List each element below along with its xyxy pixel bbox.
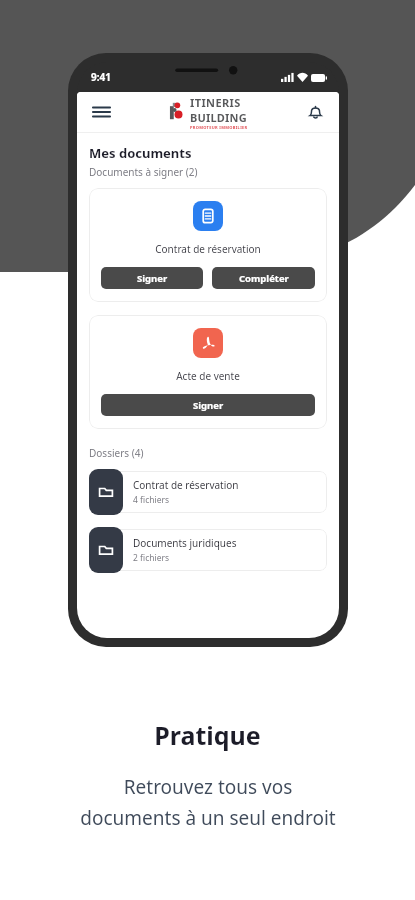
staticText: Mes documents (89, 144, 192, 162)
button[interactable]: Acte de vente (89, 315, 327, 429)
staticText: Dossiers (4) (89, 446, 144, 460)
button[interactable]: Menu (87, 98, 115, 126)
staticText: 4 fichiers (133, 494, 170, 506)
staticText: Retrouvez tous vos documents à un seul e… (80, 774, 336, 830)
staticText: PROMOTEUR IMMOBILIER (190, 125, 248, 130)
staticText: Contrat de réservation (155, 242, 261, 256)
staticText: Signer (193, 399, 224, 412)
button[interactable]: Contrat de réservation (89, 188, 327, 302)
staticText: Acte de vente (176, 369, 240, 383)
staticText: Signer (137, 272, 168, 285)
staticText: Compléter (239, 272, 289, 285)
staticText: Pratique (154, 718, 261, 752)
button[interactable]: Signer (101, 394, 315, 416)
button[interactable]: Notifications (301, 98, 329, 126)
staticText: 9:41 (91, 70, 111, 84)
staticText: BUILDING (190, 110, 247, 125)
button[interactable]: Signer (101, 267, 203, 289)
staticText: Documents à signer (2) (89, 165, 198, 179)
staticText: 2 fichiers (133, 552, 170, 564)
button[interactable]: ITINERIS (169, 95, 248, 130)
staticText: Contrat de réservation (133, 478, 239, 492)
staticText: ITINERIS (190, 95, 241, 110)
button[interactable]: Compléter (212, 267, 315, 289)
button[interactable]: Documents juridiques (89, 526, 327, 574)
staticText: Documents juridiques (133, 536, 237, 550)
button[interactable]: Contrat de réservation (89, 468, 327, 516)
